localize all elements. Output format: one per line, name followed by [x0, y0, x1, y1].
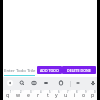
staticText: 7 — [67, 90, 69, 94]
button[interactable]: Clipboard — [57, 79, 65, 87]
button[interactable]: Search — [18, 79, 26, 87]
staticText: t — [47, 91, 49, 98]
staticText: 2 — [20, 90, 22, 94]
button[interactable]: Stickers — [42, 79, 50, 87]
staticText: w — [16, 91, 21, 98]
staticText: 1 — [10, 90, 12, 94]
button[interactable]: Voice input — [89, 79, 97, 87]
staticText: 6 — [58, 90, 60, 94]
button[interactable]: t — [43, 90, 52, 100]
button[interactable]: w — [13, 90, 23, 100]
staticText: ADD TODO — [40, 68, 59, 73]
button[interactable]: Settings — [74, 79, 82, 87]
staticText: 3 — [30, 90, 32, 94]
button[interactable]: y — [52, 90, 61, 100]
button[interactable]: p — [88, 90, 97, 100]
staticText: 5 — [49, 90, 51, 94]
staticText: p — [91, 91, 95, 98]
staticText: r — [37, 91, 40, 98]
staticText: 8 — [76, 90, 78, 94]
button[interactable]: u — [61, 90, 70, 100]
button[interactable]: GIF — [30, 79, 38, 87]
button[interactable]: r — [33, 90, 43, 100]
staticText: 4 — [40, 90, 42, 94]
staticText: e — [27, 91, 30, 98]
button[interactable]: DELETE DONE — [62, 66, 96, 74]
staticText: Enter Todo Title — [4, 67, 36, 73]
staticText: DELETE DONE — [67, 68, 91, 73]
staticText: o — [82, 91, 86, 98]
button[interactable]: ADD TODO — [37, 66, 62, 74]
button[interactable]: q — [3, 90, 13, 100]
staticText: y — [55, 91, 58, 98]
staticText: q — [6, 91, 10, 98]
staticText: 9 — [85, 90, 87, 94]
button[interactable]: o — [79, 90, 88, 100]
staticText: 0 — [94, 90, 96, 94]
staticText: u — [64, 91, 68, 98]
button[interactable]: i — [70, 90, 79, 100]
staticText: i — [74, 91, 76, 98]
button[interactable]: e — [23, 90, 33, 100]
button[interactable]: Expand toolbar — [6, 79, 14, 87]
